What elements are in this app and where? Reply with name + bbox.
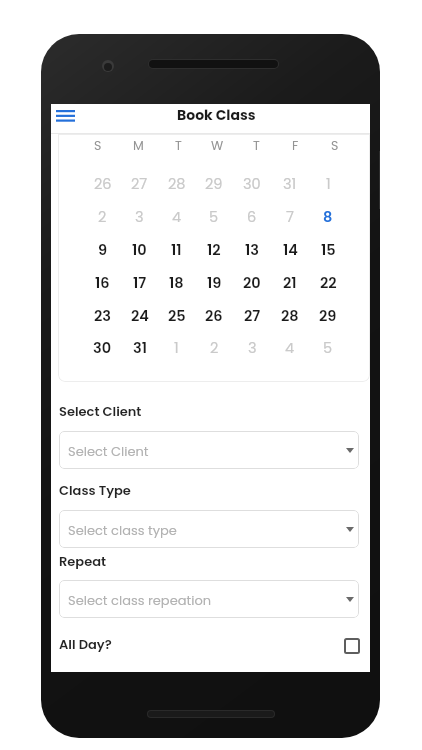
staticText: 24 <box>131 306 149 326</box>
button[interactable]: 10 <box>121 237 158 263</box>
staticText: 28 <box>168 174 186 194</box>
staticText: Book Class <box>177 105 256 125</box>
button[interactable]: 25 <box>158 303 195 329</box>
button[interactable]: 1 <box>309 171 347 197</box>
staticText: 21 <box>283 273 297 293</box>
button[interactable]: 13 <box>233 237 271 263</box>
button[interactable]: Select class type <box>59 510 359 548</box>
button[interactable]: 30 <box>233 171 271 197</box>
button[interactable]: 27 <box>233 303 271 329</box>
staticText: 13 <box>245 240 259 260</box>
button[interactable]: 14 <box>271 237 309 263</box>
staticText: 16 <box>95 273 110 293</box>
staticText: 31 <box>133 338 147 358</box>
staticText: 18 <box>169 273 184 293</box>
staticText: F <box>292 137 299 154</box>
staticText: 7 <box>286 207 294 227</box>
staticText: 2 <box>98 207 107 227</box>
button[interactable]: 28 <box>158 171 195 197</box>
staticText: 1 <box>326 174 331 194</box>
button[interactable]: 19 <box>195 270 233 296</box>
staticText: 27 <box>244 306 261 326</box>
staticText: 3 <box>135 207 144 227</box>
staticText: W <box>211 137 224 154</box>
button[interactable]: 4 <box>271 335 309 361</box>
button[interactable]: 9 <box>84 237 121 263</box>
staticText: 1 <box>174 338 179 358</box>
staticText: Class Type <box>59 481 131 499</box>
button[interactable]: 29 <box>309 303 347 329</box>
staticText: 10 <box>132 240 147 260</box>
button[interactable]: 2 <box>195 335 233 361</box>
staticText: 17 <box>133 273 147 293</box>
button[interactable]: 31 <box>271 171 309 197</box>
staticText: 3 <box>248 338 257 358</box>
staticText: 26 <box>94 174 112 194</box>
button[interactable]: 5 <box>309 335 347 361</box>
button[interactable]: 4 <box>158 204 195 230</box>
staticText: 2 <box>210 338 219 358</box>
staticText: 29 <box>205 174 223 194</box>
staticText: 20 <box>243 273 261 293</box>
button[interactable]: 22 <box>309 270 347 296</box>
button[interactable]: 5 <box>195 204 233 230</box>
button[interactable]: 21 <box>271 270 309 296</box>
button[interactable]: 30 <box>84 335 121 361</box>
button[interactable]: 8 <box>309 204 347 230</box>
button[interactable]: Open navigation menu <box>51 106 80 131</box>
button[interactable]: 6 <box>233 204 271 230</box>
button[interactable]: 3 <box>121 204 158 230</box>
button[interactable]: 17 <box>121 270 158 296</box>
button[interactable]: 1 <box>158 335 195 361</box>
staticText: 31 <box>283 174 297 194</box>
staticText: 12 <box>207 240 221 260</box>
button[interactable]: 23 <box>84 303 121 329</box>
staticText: Select class type <box>68 521 177 539</box>
button[interactable]: 3 <box>233 335 271 361</box>
staticText: Repeat <box>59 552 107 570</box>
button[interactable]: 31 <box>121 335 158 361</box>
staticText: Select Client <box>59 402 142 420</box>
staticText: Select Client <box>68 442 149 460</box>
staticText: S <box>94 137 102 154</box>
button[interactable]: 7 <box>271 204 309 230</box>
button[interactable]: 12 <box>195 237 233 263</box>
staticText: 11 <box>171 240 182 260</box>
staticText: T <box>175 137 182 154</box>
button[interactable]: 20 <box>233 270 271 296</box>
staticText: 9 <box>98 240 108 260</box>
staticText: 22 <box>320 273 337 293</box>
staticText: 4 <box>172 207 182 227</box>
button[interactable]: 15 <box>309 237 347 263</box>
staticText: M <box>133 137 144 154</box>
button[interactable]: 11 <box>158 237 195 263</box>
staticText: 15 <box>321 240 336 260</box>
button[interactable]: 2 <box>84 204 121 230</box>
staticText: 14 <box>283 240 298 260</box>
staticText: 8 <box>323 207 333 227</box>
staticText: All Day? <box>59 635 112 653</box>
staticText: 28 <box>281 306 299 326</box>
staticText: 5 <box>323 338 333 358</box>
button[interactable]: Select class repeation <box>59 580 359 618</box>
button[interactable]: Select Client <box>59 431 359 469</box>
staticText: 29 <box>319 306 337 326</box>
button[interactable]: 28 <box>271 303 309 329</box>
button[interactable]: 16 <box>84 270 121 296</box>
button[interactable]: All Day? <box>51 630 370 656</box>
staticText: 23 <box>94 306 112 326</box>
button[interactable]: 27 <box>121 171 158 197</box>
staticText: 19 <box>207 273 222 293</box>
staticText: 30 <box>243 174 261 194</box>
staticText: 6 <box>247 207 257 227</box>
button[interactable]: 24 <box>121 303 158 329</box>
button[interactable]: 18 <box>158 270 195 296</box>
staticText: 4 <box>285 338 295 358</box>
staticText: S <box>331 137 339 154</box>
staticText: T <box>253 137 260 154</box>
button[interactable]: 26 <box>84 171 121 197</box>
staticText: 25 <box>168 306 186 326</box>
staticText: 26 <box>205 306 223 326</box>
button[interactable]: 29 <box>195 171 233 197</box>
button[interactable]: 26 <box>195 303 233 329</box>
